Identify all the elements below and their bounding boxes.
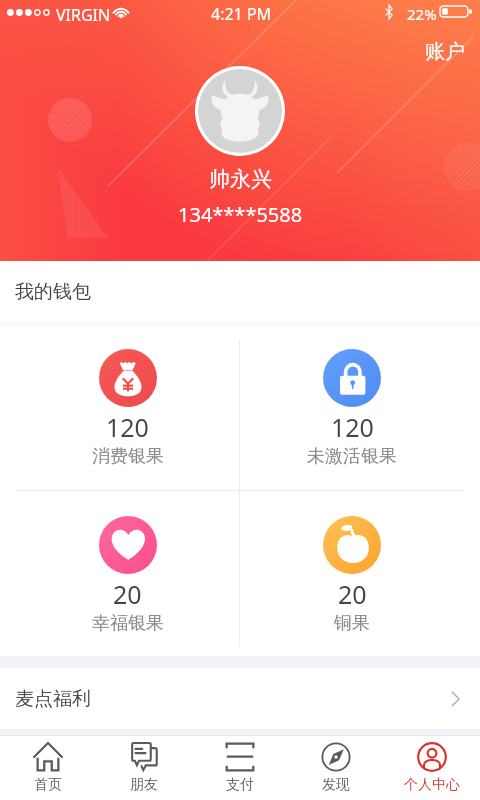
- staticText: 未激活银果: [307, 445, 397, 468]
- button[interactable]: 个人中心: [384, 736, 480, 800]
- staticText: 134****5588: [178, 201, 303, 228]
- staticText: 22%: [407, 4, 437, 24]
- staticText: 20: [113, 577, 142, 611]
- button[interactable]: 发现: [288, 736, 384, 800]
- staticText: 支付: [226, 776, 254, 794]
- staticText: 4:21 PM: [211, 3, 272, 25]
- staticText: 麦点福利: [15, 687, 91, 711]
- button[interactable]: Avatar: [195, 66, 285, 156]
- button[interactable]: 麦点福利: [0, 668, 480, 729]
- button[interactable]: 20: [240, 491, 464, 656]
- button[interactable]: 20: [16, 491, 239, 656]
- staticText: 个人中心: [404, 776, 460, 794]
- staticText: 朋友: [130, 776, 158, 794]
- button[interactable]: 120: [240, 324, 464, 490]
- staticText: 发现: [322, 776, 350, 794]
- button[interactable]: 120: [16, 324, 239, 490]
- button[interactable]: 支付: [192, 736, 288, 800]
- staticText: 铜果: [334, 612, 370, 635]
- staticText: 我的钱包: [15, 280, 91, 304]
- button[interactable]: 账户: [421, 36, 469, 67]
- staticText: 消费银果: [92, 445, 164, 468]
- staticText: 账户: [425, 39, 465, 64]
- button[interactable]: 首页: [0, 736, 96, 800]
- staticText: VIRGIN: [56, 4, 111, 26]
- staticText: 120: [331, 410, 374, 444]
- staticText: 20: [338, 577, 367, 611]
- staticText: 首页: [34, 776, 62, 794]
- staticText: 幸福银果: [92, 612, 164, 635]
- button[interactable]: 朋友: [96, 736, 192, 800]
- staticText: 帅永兴: [209, 166, 272, 192]
- staticText: 120: [106, 410, 149, 444]
